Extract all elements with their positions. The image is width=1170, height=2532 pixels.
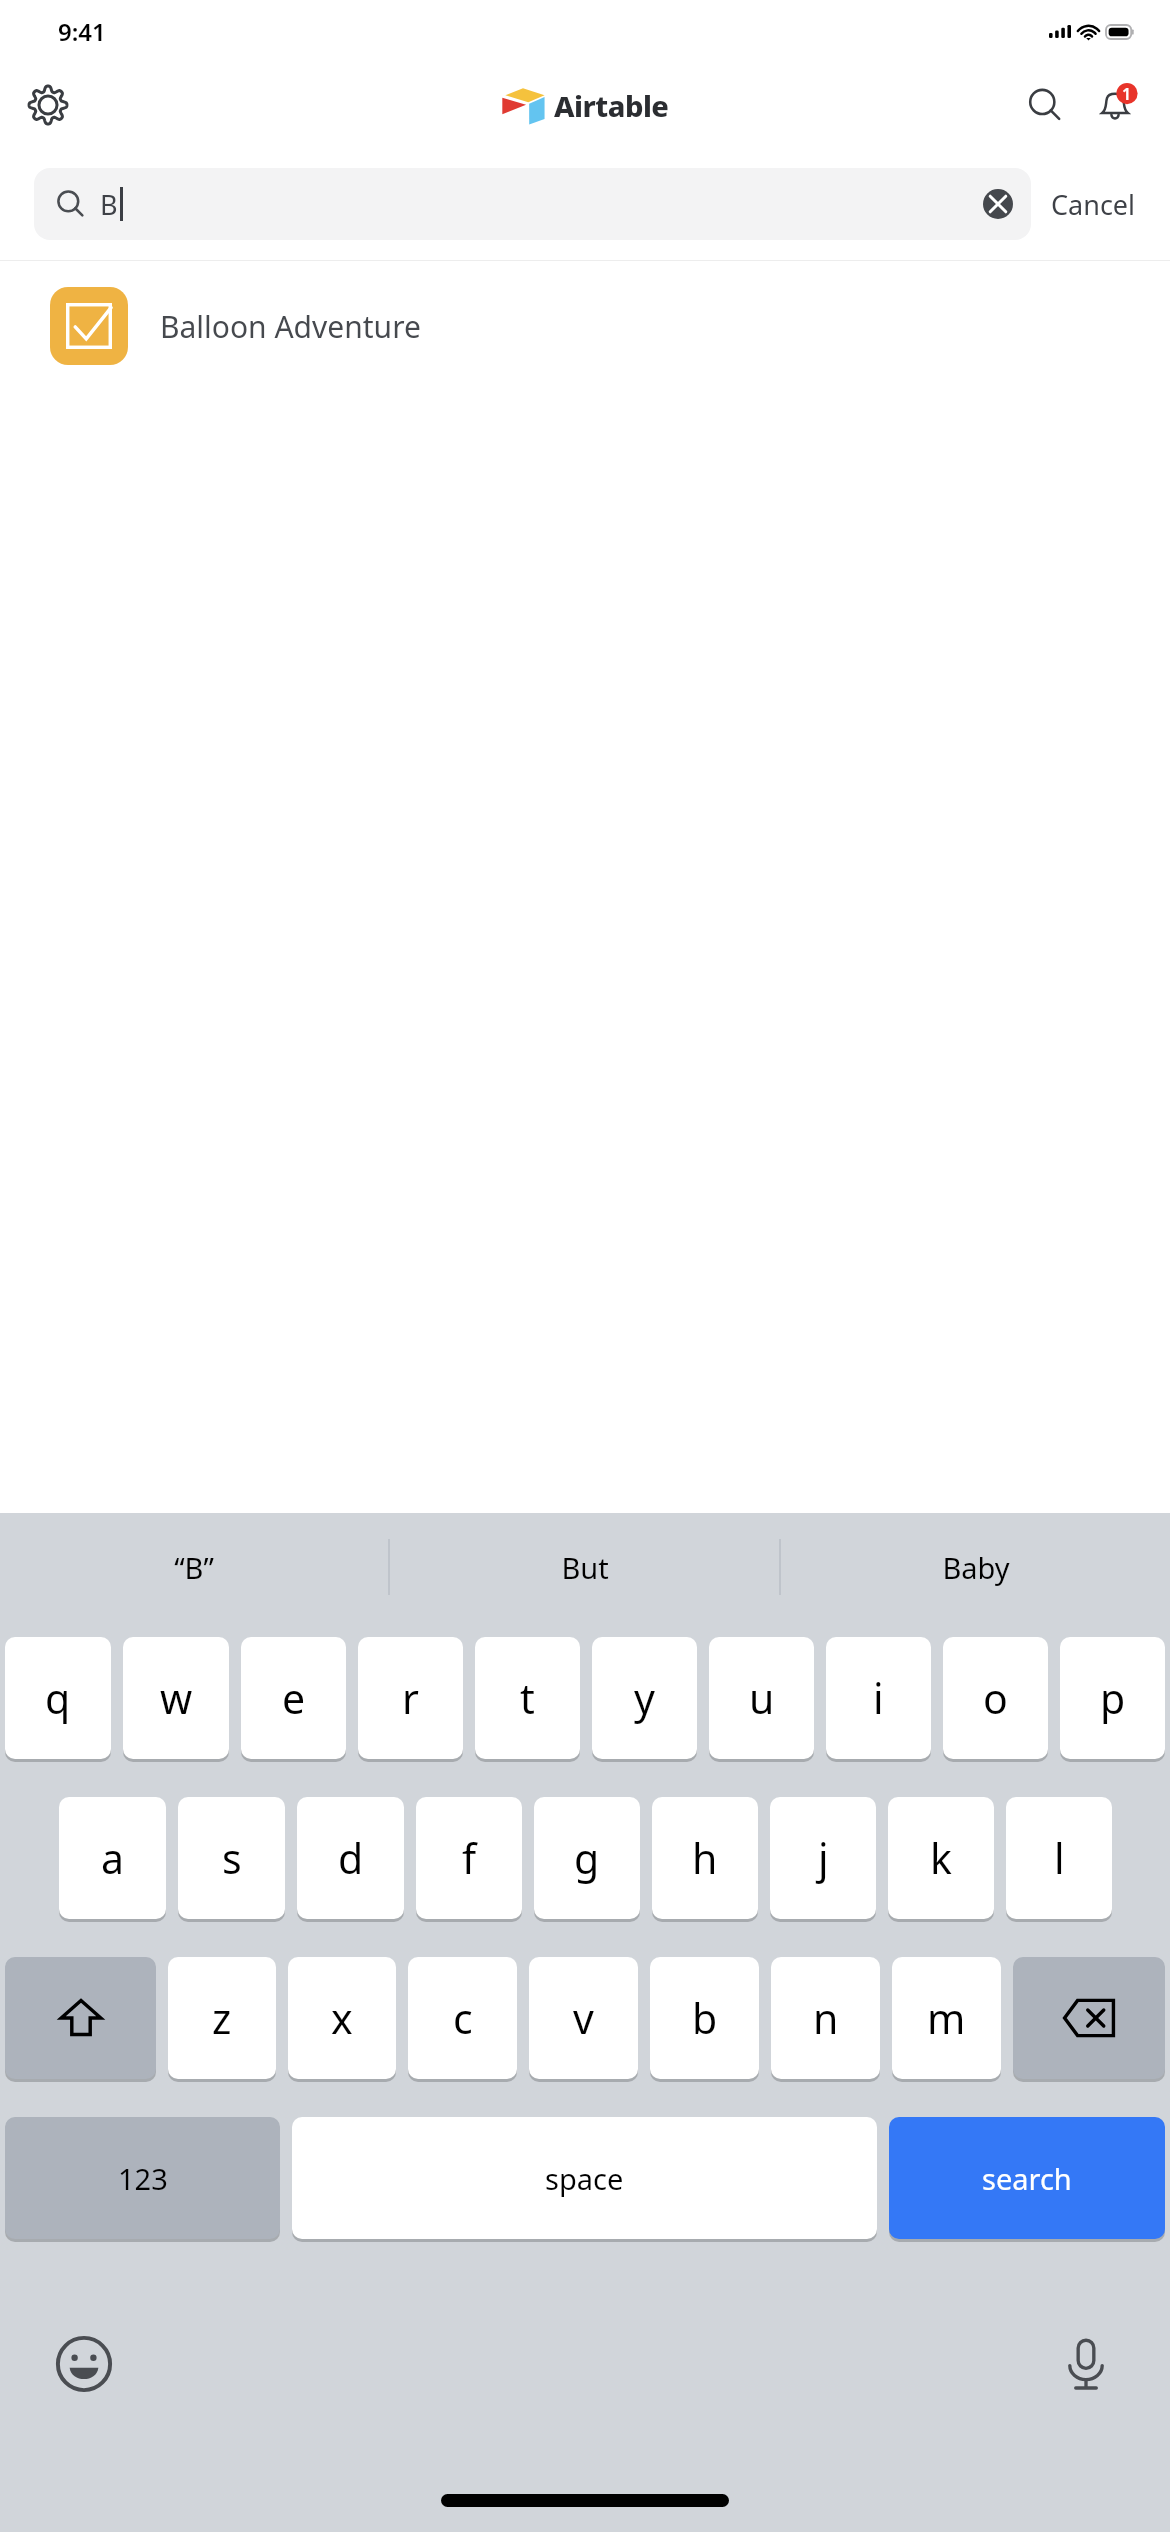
- staticText: g: [574, 1830, 600, 1886]
- staticText: r: [402, 1670, 419, 1726]
- button[interactable]: But: [390, 1513, 779, 1621]
- staticText: w: [160, 1670, 193, 1726]
- staticText: y: [634, 1670, 655, 1726]
- staticText: o: [983, 1670, 1008, 1726]
- button[interactable]: space: [292, 2117, 877, 2239]
- staticText: d: [338, 1830, 364, 1886]
- button[interactable]: Balloon Adventure: [0, 261, 1170, 391]
- button[interactable]: n: [771, 1957, 880, 2079]
- staticText: u: [749, 1670, 775, 1726]
- button[interactable]: search: [889, 2117, 1165, 2239]
- button[interactable]: p: [1060, 1637, 1165, 1759]
- button[interactable]: r: [358, 1637, 463, 1759]
- staticText: a: [101, 1830, 125, 1886]
- staticText: c: [453, 1990, 473, 2046]
- staticText: 9:41: [58, 15, 106, 48]
- staticText: search: [982, 2159, 1072, 2198]
- staticText: 1: [1122, 83, 1132, 105]
- button[interactable]: “B”: [0, 1513, 388, 1621]
- button[interactable]: j: [770, 1797, 876, 1919]
- button[interactable]: x: [288, 1957, 396, 2079]
- staticText: l: [1054, 1830, 1065, 1886]
- button[interactable]: u: [709, 1637, 814, 1759]
- button[interactable]: h: [652, 1797, 758, 1919]
- staticText: Balloon Adventure: [160, 306, 421, 347]
- button[interactable]: Cancel: [1045, 176, 1142, 233]
- other: Shift: [5, 1957, 156, 2082]
- button[interactable]: Emoji keyboard: [48, 2328, 120, 2400]
- staticText: x: [331, 1990, 353, 2046]
- button[interactable]: v: [529, 1957, 638, 2079]
- button[interactable]: Baby: [781, 1513, 1170, 1621]
- staticText: Airtable: [554, 86, 669, 125]
- staticText: q: [45, 1670, 71, 1726]
- staticText: m: [927, 1990, 966, 2046]
- staticText: B: [100, 186, 118, 223]
- button[interactable]: m: [892, 1957, 1001, 2079]
- staticText: t: [520, 1670, 535, 1726]
- button[interactable]: Clear search: [981, 187, 1015, 221]
- staticText: v: [573, 1990, 594, 2046]
- button[interactable]: s: [178, 1797, 285, 1919]
- staticText: i: [873, 1670, 884, 1726]
- other: Backspace: [1013, 1957, 1165, 2082]
- button[interactable]: o: [943, 1637, 1048, 1759]
- staticText: s: [222, 1830, 242, 1886]
- staticText: space: [545, 2159, 624, 2198]
- button[interactable]: t: [475, 1637, 580, 1759]
- button[interactable]: i: [826, 1637, 931, 1759]
- staticText: p: [1100, 1670, 1126, 1726]
- button[interactable]: g: [534, 1797, 640, 1919]
- staticText: e: [282, 1670, 306, 1726]
- button[interactable]: w: [123, 1637, 229, 1759]
- staticText: 123: [118, 2159, 168, 2198]
- staticText: “B”: [174, 1548, 214, 1587]
- staticText: h: [692, 1830, 718, 1886]
- staticText: f: [462, 1830, 477, 1886]
- button[interactable]: [5, 1957, 156, 2079]
- button[interactable]: [1013, 1957, 1165, 2079]
- button[interactable]: c: [408, 1957, 517, 2079]
- staticText: Cancel: [1051, 186, 1136, 223]
- button[interactable]: Search: [1016, 76, 1074, 134]
- staticText: b: [692, 1990, 718, 2046]
- staticText: z: [212, 1990, 232, 2046]
- button[interactable]: f: [416, 1797, 522, 1919]
- button[interactable]: y: [592, 1637, 697, 1759]
- button[interactable]: a: [59, 1797, 166, 1919]
- button[interactable]: q: [5, 1637, 111, 1759]
- button[interactable]: Notifications, 1 new: [1086, 76, 1144, 134]
- button[interactable]: Dictate: [1050, 2328, 1122, 2400]
- button[interactable]: d: [297, 1797, 404, 1919]
- button[interactable]: Settings: [20, 77, 76, 133]
- button[interactable]: b: [650, 1957, 759, 2079]
- button[interactable]: B: [34, 168, 1031, 240]
- staticText: j: [818, 1830, 829, 1886]
- staticText: But: [561, 1548, 609, 1587]
- button[interactable]: 123: [5, 2117, 280, 2239]
- button[interactable]: e: [241, 1637, 346, 1759]
- staticText: Baby: [942, 1548, 1010, 1587]
- button[interactable]: l: [1006, 1797, 1112, 1919]
- button[interactable]: k: [888, 1797, 994, 1919]
- staticText: k: [930, 1830, 952, 1886]
- button[interactable]: z: [168, 1957, 276, 2079]
- staticText: n: [813, 1990, 839, 2046]
